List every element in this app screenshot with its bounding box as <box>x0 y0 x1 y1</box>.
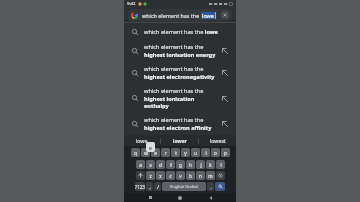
button[interactable]: f <box>166 160 175 169</box>
staticText: s <box>149 162 152 168</box>
button[interactable]: r <box>161 148 170 157</box>
staticText: lowest <box>210 137 226 144</box>
staticText: which element has the lowe <box>144 28 229 36</box>
staticText: h <box>189 162 192 168</box>
button[interactable]: . <box>207 182 214 191</box>
staticText: which element has the highest electroneg… <box>144 65 216 80</box>
staticText: which element has the <box>142 12 201 19</box>
button[interactable]: t <box>171 148 180 157</box>
button[interactable]: Backspace <box>216 171 225 180</box>
button[interactable]: Home <box>175 193 185 202</box>
button[interactable]: y <box>181 148 190 157</box>
button[interactable]: Insert suggestion <box>220 94 229 103</box>
button[interactable]: which element has the highest electroneg… <box>127 63 233 82</box>
staticText: w <box>144 150 148 156</box>
button[interactable]: lowe <box>124 135 160 146</box>
button[interactable]: n <box>196 171 205 180</box>
button[interactable]: b <box>186 171 195 180</box>
staticText: , <box>149 184 151 190</box>
staticText: z <box>149 173 152 179</box>
button[interactable]: which element has the <box>127 9 233 21</box>
staticText: u <box>194 150 197 156</box>
button[interactable]: u <box>191 148 200 157</box>
staticText: x <box>159 173 162 179</box>
button[interactable]: which element has the highest electron a… <box>127 114 233 133</box>
button[interactable]: Search <box>215 182 225 191</box>
button[interactable]: w <box>141 148 150 157</box>
button[interactable]: v <box>176 171 185 180</box>
button[interactable]: e <box>151 148 160 157</box>
staticText: / <box>157 184 159 190</box>
button[interactable]: m <box>206 171 215 180</box>
staticText: which element has the highest ionization… <box>144 87 216 109</box>
button[interactable]: Recents <box>145 193 155 202</box>
button[interactable]: which element has the highest ionisation… <box>127 41 233 60</box>
button[interactable]: lowest <box>199 135 236 146</box>
button[interactable]: Insert suggestion <box>220 119 229 128</box>
staticText: a <box>139 162 142 168</box>
staticText: p <box>224 150 227 156</box>
staticText: m <box>208 173 213 179</box>
button[interactable]: Insert suggestion <box>220 46 229 55</box>
staticText: which element has the highest electron a… <box>144 116 216 131</box>
button[interactable]: ?123 <box>135 182 145 191</box>
button[interactable]: Clear query <box>221 11 229 19</box>
staticText: q <box>134 150 137 156</box>
button[interactable]: o <box>211 148 220 157</box>
staticText: which element has the highest ionisation… <box>144 43 216 58</box>
button[interactable]: a <box>136 160 145 169</box>
button[interactable]: l <box>216 160 225 169</box>
button[interactable]: lower <box>161 135 198 146</box>
staticText: b <box>189 173 192 179</box>
button[interactable]: g <box>176 160 185 169</box>
button[interactable]: Space <box>162 182 206 191</box>
staticText: English (India) <box>170 184 198 190</box>
button[interactable]: c <box>166 171 175 180</box>
staticText: c <box>169 173 172 179</box>
staticText: t <box>175 150 177 156</box>
button[interactable]: which element has the lowe <box>127 25 233 38</box>
staticText: lowe <box>136 137 148 144</box>
button[interactable]: k <box>206 160 215 169</box>
staticText: v <box>179 173 182 179</box>
staticText: lower <box>173 137 187 144</box>
button[interactable]: h <box>186 160 195 169</box>
button[interactable]: Shift <box>136 171 145 180</box>
button[interactable]: / <box>154 182 161 191</box>
button[interactable]: s <box>146 160 155 169</box>
staticText: 9:42 <box>127 1 136 7</box>
button[interactable]: which element has the highest ionization… <box>127 85 233 111</box>
staticText: e <box>149 144 152 151</box>
button[interactable]: x <box>156 171 165 180</box>
staticText: r <box>165 150 167 156</box>
staticText: d <box>159 162 162 168</box>
staticText: k <box>209 162 212 168</box>
button[interactable]: p <box>221 148 230 157</box>
staticText: y <box>184 150 187 156</box>
staticText: lowe <box>202 12 214 19</box>
button[interactable]: d <box>156 160 165 169</box>
staticText: o <box>214 150 217 156</box>
staticText: ?123 <box>135 184 145 190</box>
staticText: g <box>179 162 182 168</box>
button[interactable]: z <box>146 171 155 180</box>
button[interactable]: , <box>146 182 153 191</box>
staticText: . <box>210 184 212 190</box>
staticText: l <box>220 162 222 168</box>
button[interactable]: i <box>201 148 210 157</box>
staticText: n <box>199 173 202 179</box>
button[interactable]: q <box>131 148 140 157</box>
button[interactable]: Back <box>206 193 216 202</box>
staticText: j <box>200 162 202 168</box>
staticText: f <box>170 162 172 168</box>
button[interactable]: j <box>196 160 205 169</box>
staticText: e <box>154 150 157 156</box>
staticText: i <box>205 150 207 156</box>
button[interactable]: Insert suggestion <box>220 68 229 77</box>
